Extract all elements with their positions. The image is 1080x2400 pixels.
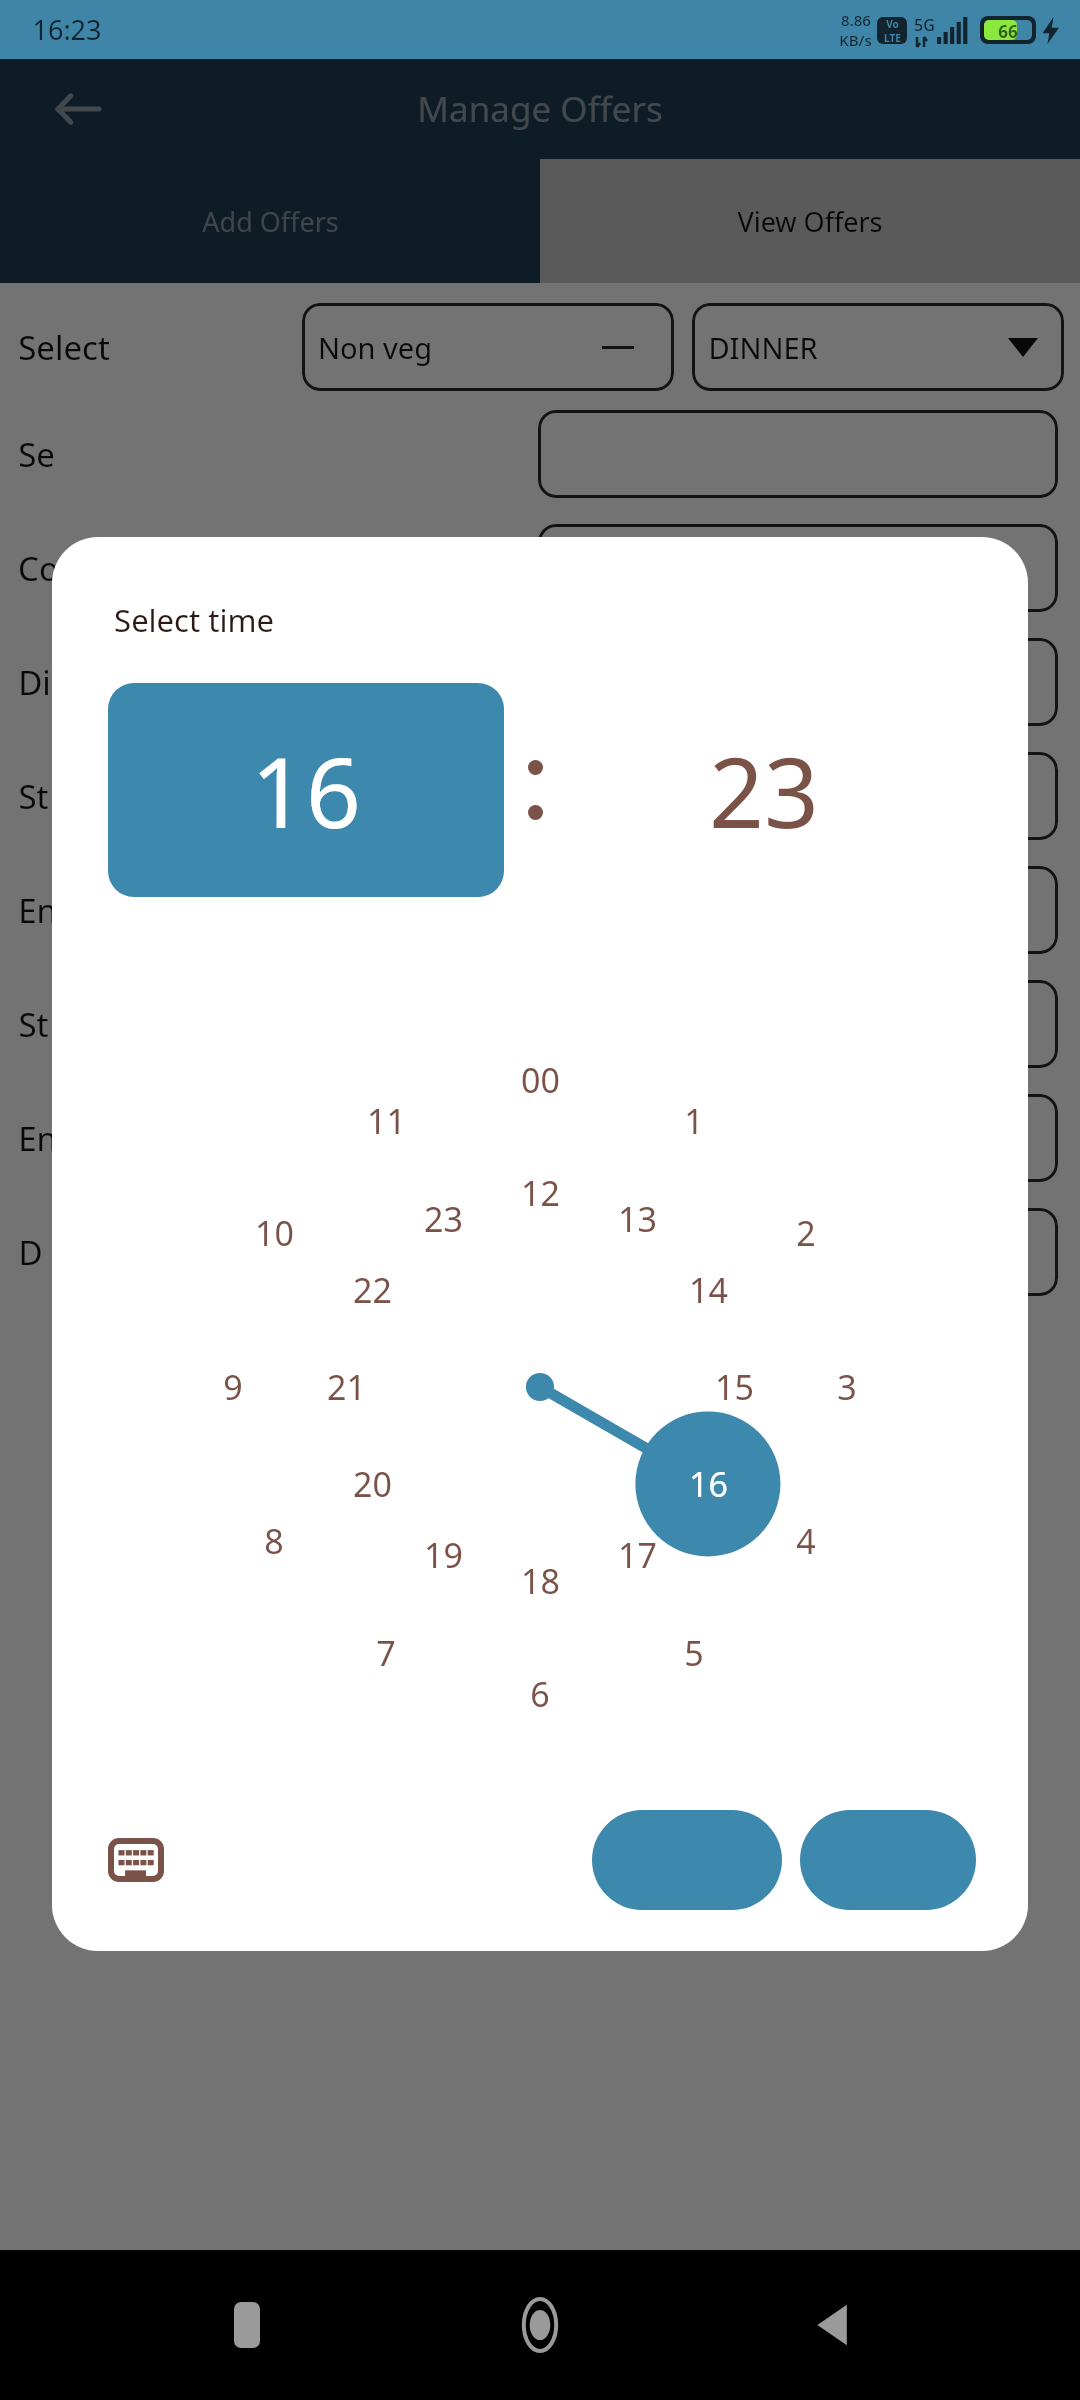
staticText: En — [18, 1116, 57, 1161]
button[interactable]: 7 — [350, 1624, 422, 1682]
staticText: DINNER — [708, 328, 818, 367]
button[interactable]: 16 — [108, 683, 504, 897]
staticText: 8 — [264, 1518, 284, 1564]
staticText: 16 — [251, 725, 361, 856]
button[interactable] — [538, 752, 1058, 840]
button[interactable] — [538, 1094, 1058, 1182]
button[interactable]: 9 — [197, 1358, 269, 1416]
staticText: 14 — [689, 1267, 728, 1313]
staticText: 23 — [424, 1196, 463, 1242]
staticText: Co — [18, 546, 59, 591]
staticText: LTE — [884, 31, 901, 44]
button[interactable]: 5 — [658, 1624, 730, 1682]
staticText: St — [18, 1002, 49, 1047]
staticText: Di — [18, 660, 51, 705]
button[interactable] — [538, 866, 1058, 954]
staticText: 20 — [353, 1461, 392, 1507]
staticText: 16 — [689, 1461, 728, 1507]
button[interactable] — [538, 1208, 1058, 1296]
button[interactable]: 18 — [504, 1552, 576, 1610]
button[interactable]: 11 — [350, 1092, 422, 1150]
button[interactable] — [538, 638, 1058, 726]
staticText: 7 — [376, 1630, 396, 1676]
staticText: Vo — [886, 17, 899, 31]
staticText: 11 — [367, 1098, 406, 1144]
button[interactable]: Back — [787, 2279, 879, 2371]
button[interactable]: 22 — [336, 1261, 408, 1319]
button[interactable]: 8 — [238, 1512, 310, 1570]
staticText: 22 — [353, 1267, 392, 1313]
button[interactable]: 16 — [672, 1455, 744, 1513]
staticText: 10 — [255, 1210, 294, 1256]
button[interactable]: 14 — [672, 1261, 744, 1319]
staticText: 2 — [796, 1210, 816, 1256]
button[interactable]: 23 — [566, 683, 962, 897]
staticText: Select time — [114, 599, 274, 641]
staticText: St — [18, 774, 49, 819]
staticText: 4 — [796, 1518, 816, 1564]
button[interactable] — [592, 1810, 782, 1910]
staticText: 23 — [709, 725, 819, 856]
button[interactable]: 3 — [811, 1358, 883, 1416]
button[interactable]: Add Offers — [0, 159, 540, 283]
staticText: 00 — [521, 1057, 560, 1103]
staticText: 9 — [223, 1364, 243, 1410]
button[interactable]: 4 — [770, 1512, 842, 1570]
button[interactable]: 17 — [601, 1526, 673, 1584]
staticText: En — [18, 888, 57, 933]
button[interactable]: 21 — [310, 1358, 382, 1416]
button[interactable] — [800, 1810, 976, 1910]
staticText: Select — [18, 325, 110, 370]
button[interactable] — [538, 524, 1058, 612]
staticText: 12 — [521, 1170, 560, 1216]
staticText: 21 — [327, 1364, 366, 1410]
staticText: 3 — [837, 1364, 857, 1410]
staticText: Non veg — [318, 328, 432, 367]
button[interactable]: Home — [494, 2279, 586, 2371]
button[interactable]: View Offers — [540, 159, 1080, 283]
button[interactable] — [538, 410, 1058, 498]
button[interactable]: 2 — [770, 1204, 842, 1262]
button[interactable]: DINNER — [692, 303, 1064, 391]
staticText: 8.86 — [841, 10, 871, 30]
button[interactable]: Back — [46, 78, 108, 140]
button[interactable]: 6 — [504, 1665, 576, 1723]
button[interactable]: 13 — [601, 1190, 673, 1248]
staticText: 6 — [530, 1671, 550, 1717]
staticText: 1 — [684, 1098, 704, 1144]
staticText: 66 — [998, 20, 1018, 40]
staticText: 5 — [684, 1630, 704, 1676]
button[interactable]: 10 — [238, 1204, 310, 1262]
staticText: D — [18, 1230, 43, 1275]
staticText: View Offers — [737, 203, 883, 240]
staticText: 19 — [424, 1532, 463, 1578]
button[interactable]: Recents — [201, 2279, 293, 2371]
staticText: Se — [18, 432, 55, 477]
staticText: 5G — [914, 14, 935, 36]
button[interactable]: 00 — [504, 1051, 576, 1109]
staticText: Add Offers — [202, 203, 339, 240]
staticText: 16:23 — [32, 11, 102, 48]
button[interactable]: Non veg — [302, 303, 674, 391]
staticText: 17 — [618, 1532, 657, 1578]
button[interactable] — [538, 980, 1058, 1068]
button[interactable]: 1 — [658, 1092, 730, 1150]
button[interactable]: 12 — [504, 1164, 576, 1222]
staticText: 15 — [715, 1364, 754, 1410]
button[interactable]: 19 — [407, 1526, 479, 1584]
button[interactable]: Switch to text input — [104, 1828, 168, 1892]
staticText: KB/s — [839, 30, 872, 50]
button[interactable]: 15 — [698, 1358, 770, 1416]
button[interactable]: 20 — [336, 1455, 408, 1513]
button[interactable]: 23 — [407, 1190, 479, 1248]
staticText: Manage Offers — [417, 85, 663, 133]
staticText: 18 — [521, 1558, 560, 1604]
staticText: 13 — [618, 1196, 657, 1242]
